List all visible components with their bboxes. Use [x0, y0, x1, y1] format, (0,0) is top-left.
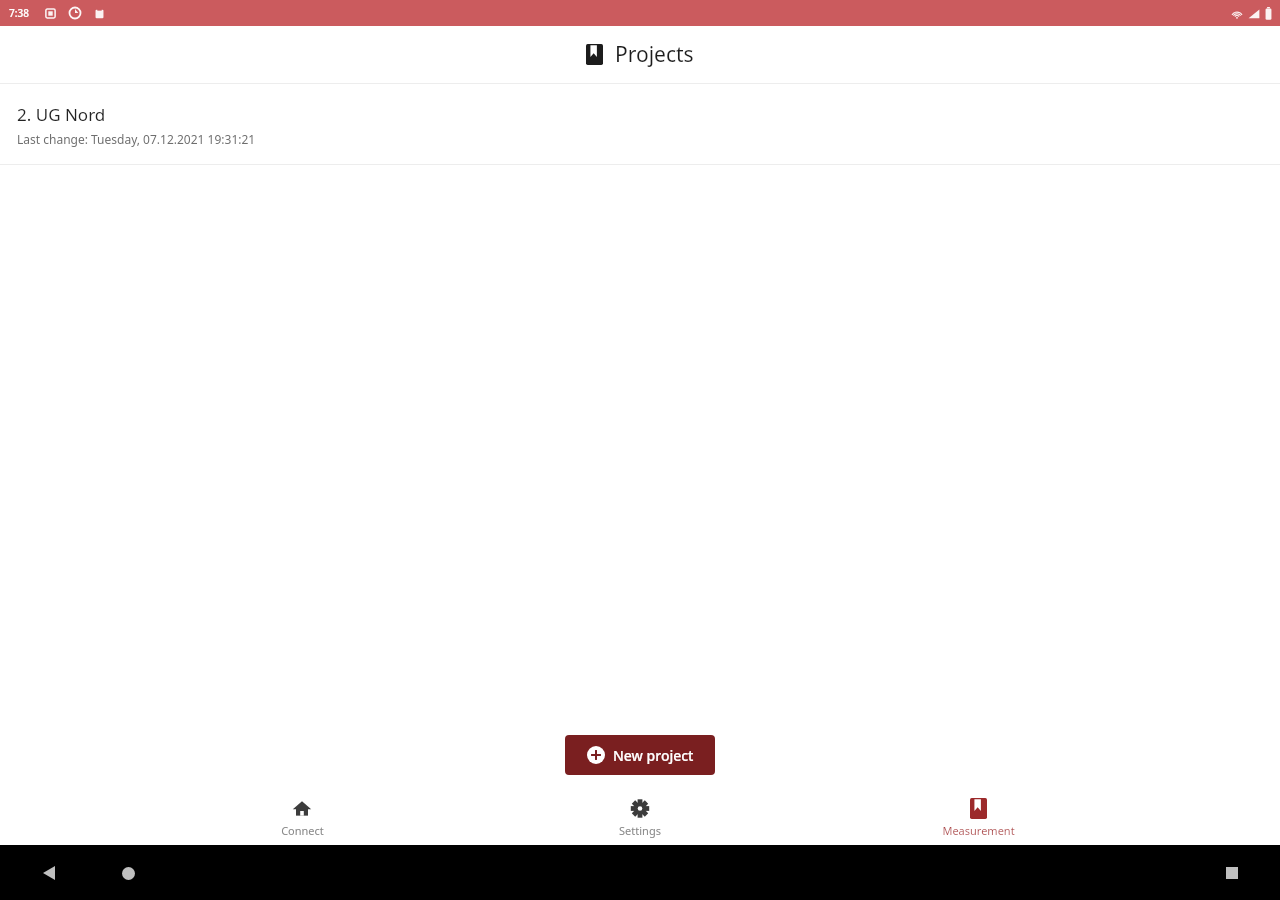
staticText: Measurement	[942, 823, 1015, 838]
staticText: 2. UG Nord	[17, 103, 106, 126]
button[interactable]: New project	[565, 735, 715, 775]
staticText: Connect	[281, 823, 324, 838]
button[interactable]: Measurement	[809, 793, 1147, 845]
button[interactable]: Home	[117, 862, 139, 884]
staticText: New project	[613, 746, 694, 765]
button[interactable]: Recent apps	[1221, 862, 1243, 884]
staticText: Projects	[615, 40, 694, 69]
staticText: 7:38	[9, 6, 29, 20]
button[interactable]: Connect	[133, 793, 471, 845]
button[interactable]: 2. UG Nord	[0, 84, 1280, 164]
button[interactable]: Back	[38, 862, 60, 884]
staticText: Last change: Tuesday, 07.12.2021 19:31:2…	[17, 131, 256, 147]
button[interactable]: Settings	[471, 793, 809, 845]
staticText: Settings	[619, 823, 661, 838]
